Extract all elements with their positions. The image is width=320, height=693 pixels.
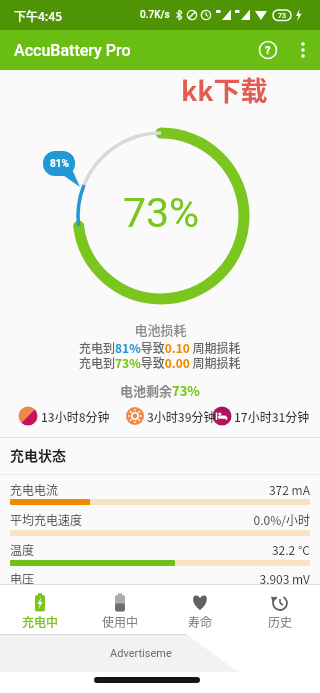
staticText: 充电电流 xyxy=(10,481,59,498)
staticText: 81% xyxy=(50,158,69,170)
button[interactable]: AccuBattery Pro xyxy=(14,30,214,70)
staticText: 充电到81%导致0.10 周期损耗 xyxy=(79,339,241,355)
button[interactable]: Advertiseme xyxy=(110,639,195,667)
staticText: 73% xyxy=(123,189,200,237)
staticText: AccuBattery Pro xyxy=(14,41,131,60)
staticText: 73 xyxy=(278,12,286,20)
staticText: 32.2 °C xyxy=(271,541,310,558)
staticText: 下午4:45 xyxy=(14,7,63,24)
staticText: 电池损耗 xyxy=(134,320,187,338)
staticText: 13小时8分钟 xyxy=(41,408,110,425)
staticText: 17小时31分钟 xyxy=(234,408,310,425)
staticText: 寿命 xyxy=(188,613,213,630)
button[interactable]: 使用中 xyxy=(80,584,160,634)
button[interactable]: 充电中 xyxy=(0,584,80,634)
staticText: 3,903 mV xyxy=(259,570,310,587)
button[interactable]: ? xyxy=(258,40,278,60)
staticText: kk下载 xyxy=(181,70,268,108)
staticText: 历史 xyxy=(268,613,293,630)
staticText: 温度 xyxy=(10,541,35,558)
staticText: 充电状态 xyxy=(10,445,66,463)
staticText: 0.7K/s xyxy=(140,9,170,21)
staticText: 3小时39分钟 xyxy=(147,408,216,425)
staticText: Advertiseme xyxy=(110,647,172,660)
staticText: 平均充电速度 xyxy=(10,511,83,528)
staticText: 0.0%/小时 xyxy=(253,511,310,528)
button[interactable]: 寿命 xyxy=(160,584,240,634)
button[interactable] xyxy=(293,40,313,60)
staticText: 电压 xyxy=(10,570,35,587)
staticText: ? xyxy=(265,44,271,57)
staticText: 充电到73%导致0.00 周期损耗 xyxy=(79,354,241,370)
staticText: 充电中 xyxy=(22,613,59,630)
staticText: 使用中 xyxy=(102,613,139,630)
button[interactable]: 历史 xyxy=(240,584,320,634)
staticText: 电池剩余73% xyxy=(120,381,200,399)
staticText: 372 mA xyxy=(268,481,310,498)
